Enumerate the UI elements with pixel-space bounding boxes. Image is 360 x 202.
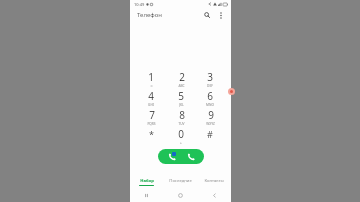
staticText: 1 — [148, 70, 154, 84]
staticText: 9 — [208, 108, 214, 122]
staticText: 10:49 — [134, 2, 145, 7]
staticText: 3 — [207, 70, 213, 84]
staticText: 7 — [149, 108, 155, 122]
staticText: Последние — [169, 178, 192, 184]
button[interactable]: Search — [202, 10, 212, 20]
staticText: 2 — [179, 70, 185, 84]
button[interactable]: 8 — [167, 107, 195, 126]
button[interactable]: Back — [197, 188, 231, 202]
staticText: MNO — [206, 103, 214, 107]
button[interactable]: # — [196, 126, 224, 145]
staticText: + — [180, 141, 182, 145]
button[interactable]: * — [137, 126, 165, 145]
button[interactable]: 6 — [196, 88, 224, 107]
button[interactable]: 9 — [196, 107, 224, 126]
button[interactable]: Контакты — [197, 175, 231, 188]
button[interactable]: Call — [158, 149, 204, 164]
button[interactable]: 0 — [167, 126, 195, 145]
staticText: ABC — [178, 84, 185, 88]
button[interactable]: Home — [163, 188, 197, 202]
staticText: Набор — [140, 178, 154, 184]
staticText: JKL — [179, 103, 184, 107]
button[interactable]: Набор — [130, 175, 163, 188]
staticText: TUV — [178, 122, 185, 126]
staticText: Телефон — [137, 11, 162, 19]
staticText: 5 — [178, 89, 184, 103]
button[interactable]: Recents — [130, 188, 163, 202]
staticText: DEF — [207, 84, 213, 88]
staticText: WXYZ — [206, 122, 215, 126]
staticText: 4 — [148, 89, 154, 103]
button[interactable]: 1 — [137, 69, 165, 88]
button[interactable]: 4 — [137, 88, 165, 107]
staticText: 6 — [207, 89, 213, 103]
staticText: 8 — [179, 108, 185, 122]
button[interactable]: 3 — [196, 69, 224, 88]
button[interactable]: 2 — [167, 69, 195, 88]
staticText: Контакты — [204, 178, 224, 184]
button[interactable]: 7 — [137, 107, 165, 126]
staticText: PQRS — [147, 122, 156, 126]
staticText: 0 — [178, 127, 184, 141]
staticText: * — [149, 128, 154, 140]
staticText: GHI — [148, 103, 154, 107]
button[interactable]: More options — [216, 10, 226, 20]
button[interactable]: Последние — [163, 175, 197, 188]
button[interactable]: 5 — [167, 88, 195, 107]
staticText: ∞ — [150, 84, 153, 88]
staticText: # — [207, 128, 213, 140]
